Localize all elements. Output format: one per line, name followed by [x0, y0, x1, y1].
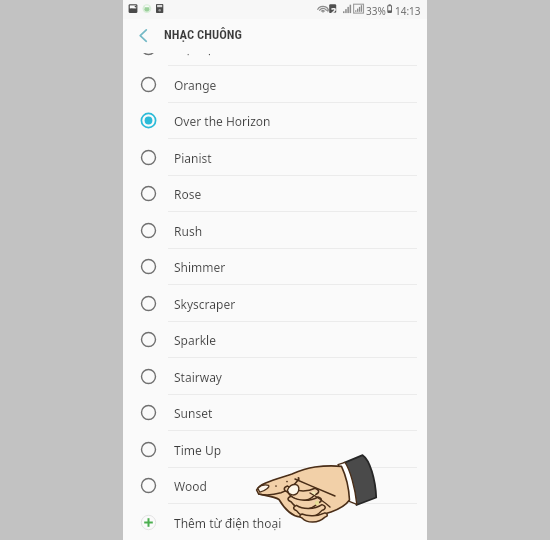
button[interactable]: Shimmer [123, 248, 427, 285]
button[interactable]: Sparkle [123, 321, 427, 358]
button[interactable]: Rose [123, 175, 427, 212]
button[interactable]: Back [130, 19, 164, 51]
staticText: Mặc định [174, 53, 226, 56]
button[interactable]: Sunset [123, 394, 427, 431]
button[interactable]: Time Up [123, 431, 427, 468]
staticText: Stairway [174, 369, 222, 385]
staticText: Wood [174, 478, 207, 494]
staticText: 14:13 [395, 4, 421, 18]
button[interactable]: Orange [123, 66, 427, 103]
staticText: Orange [174, 77, 217, 93]
button[interactable]: Rush [123, 212, 427, 249]
staticText: Rose [174, 186, 202, 202]
staticText: Shimmer [174, 259, 226, 275]
staticText: Time Up [174, 442, 222, 458]
staticText: Sunset [174, 405, 213, 421]
button[interactable]: Thêm từ điện thoại [123, 504, 427, 540]
staticText: Rush [174, 223, 203, 239]
button[interactable]: Skyscraper [123, 285, 427, 322]
staticText: Thêm từ điện thoại [174, 515, 282, 531]
staticText: Over the Horizon [174, 113, 271, 129]
button[interactable]: Wood [123, 467, 427, 504]
button[interactable]: Pianist [123, 139, 427, 176]
staticText: Skyscraper [174, 296, 236, 312]
button[interactable]: Stairway [123, 358, 427, 395]
staticText: 2 [331, 4, 337, 16]
staticText: 33% [366, 4, 386, 18]
staticText: NHẠC CHUÔNG [164, 27, 242, 42]
staticText: Sparkle [174, 332, 216, 348]
button[interactable]: Over the Horizon [123, 102, 427, 139]
button[interactable]: Mặc định [123, 53, 427, 66]
staticText: Pianist [174, 150, 212, 166]
